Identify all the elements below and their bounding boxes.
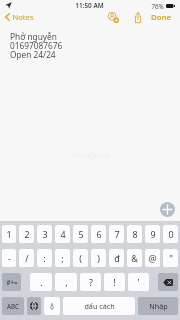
button[interactable]: 0 [163, 225, 178, 243]
button[interactable]: : [37, 249, 52, 267]
button[interactable]: Notes [0, 9, 38, 25]
staticText: " [169, 252, 173, 264]
staticText: #+= [6, 278, 18, 286]
button[interactable]: đ [109, 249, 124, 267]
button[interactable]: Nhập [138, 297, 178, 315]
staticText: @ [148, 252, 157, 264]
staticText: Done [151, 12, 171, 22]
staticText: 4 [60, 228, 66, 240]
button[interactable]: dấu cách [63, 297, 135, 315]
staticText: 9 [150, 228, 156, 240]
button[interactable]: Share [132, 9, 144, 25]
staticText: dấu cách [84, 301, 115, 311]
button[interactable]: 2 [19, 225, 34, 243]
staticText: Nhập [149, 301, 168, 311]
button[interactable]: Done [147, 9, 175, 25]
button[interactable]: #+= [2, 273, 21, 291]
button[interactable]: 9 [145, 225, 160, 243]
button[interactable]: Change keyboard [27, 297, 41, 315]
staticText: ABC [7, 302, 19, 310]
button[interactable]: Dictate [44, 297, 60, 315]
staticText: 7 [114, 228, 120, 240]
staticText: 6 [96, 228, 102, 240]
button[interactable]: 7 [109, 225, 124, 243]
button[interactable]: 4 [55, 225, 70, 243]
button[interactable]: , [55, 273, 77, 291]
staticText: ? [89, 276, 93, 288]
staticText: 0 [168, 228, 174, 240]
button[interactable]: & [127, 249, 142, 267]
staticText: ! [113, 276, 116, 288]
button[interactable]: ABC [2, 297, 24, 315]
button[interactable]: ! [104, 273, 125, 291]
button[interactable]: " [163, 249, 178, 267]
button[interactable]: . [30, 273, 52, 291]
staticText: 11:50 AM [75, 1, 104, 10]
button[interactable]: 8 [127, 225, 142, 243]
button[interactable]: ? [80, 273, 101, 291]
staticText: 2 [24, 228, 30, 240]
button[interactable]: ' [128, 273, 149, 291]
staticText: Notes [12, 12, 34, 22]
staticText: : [43, 252, 46, 264]
staticText: ' [137, 276, 140, 288]
staticText: . [40, 276, 43, 288]
staticText: Phở nguyễn 01697087676 Open 24/24 [10, 31, 63, 61]
staticText: ) [97, 252, 100, 264]
button[interactable]: 1 [2, 225, 16, 243]
staticText: ; [61, 252, 64, 264]
staticText: đ [114, 252, 120, 264]
button[interactable]: ; [55, 249, 70, 267]
staticText: 8 [132, 228, 138, 240]
button[interactable]: ) [91, 249, 106, 267]
button[interactable]: Add attachment [160, 202, 175, 217]
staticText: , [65, 276, 68, 288]
staticText: & [131, 252, 138, 264]
button[interactable]: 5 [73, 225, 88, 243]
button[interactable]: / [19, 249, 34, 267]
staticText: / [25, 252, 29, 264]
button[interactable]: Backspace [158, 273, 178, 291]
staticText: 3 [42, 228, 48, 240]
staticText: ( [79, 252, 82, 264]
button[interactable]: 6 [91, 225, 106, 243]
staticText: - [8, 252, 11, 264]
staticText: 76% [151, 2, 164, 10]
button[interactable]: ( [73, 249, 88, 267]
button[interactable]: @ [145, 249, 160, 267]
staticText: 5 [78, 228, 84, 240]
button[interactable]: - [2, 249, 16, 267]
button[interactable]: 3 [37, 225, 52, 243]
button[interactable]: Add people [107, 9, 120, 25]
staticText: 1 [6, 228, 12, 240]
